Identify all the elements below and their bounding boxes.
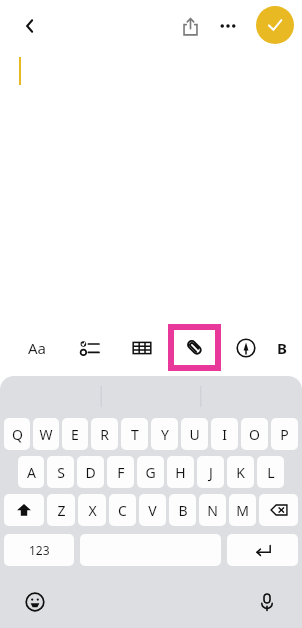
staticText: Z — [57, 501, 66, 520]
button[interactable]: R — [91, 418, 118, 450]
staticText: R — [100, 425, 109, 444]
button[interactable]: Checklist — [64, 327, 116, 369]
button[interactable]: E — [62, 418, 88, 450]
staticText: D — [85, 463, 96, 482]
button[interactable]: Markup — [220, 327, 272, 369]
button[interactable]: J — [197, 456, 224, 488]
button[interactable]: H — [167, 456, 194, 488]
button[interactable]: Share — [172, 8, 209, 44]
button[interactable]: Y — [151, 418, 178, 450]
staticText: T — [131, 425, 139, 444]
button[interactable]: Shift — [4, 494, 44, 526]
button[interactable]: B — [169, 494, 196, 526]
staticText: Q — [12, 425, 23, 444]
staticText: B — [178, 501, 188, 520]
button[interactable]: M — [229, 494, 256, 526]
button[interactable]: G — [137, 456, 164, 488]
staticText: G — [145, 463, 156, 482]
staticText: W — [39, 425, 53, 444]
button[interactable]: U — [181, 418, 208, 450]
button[interactable]: F — [107, 456, 134, 488]
staticText: B — [277, 338, 287, 358]
staticText: N — [207, 501, 218, 520]
staticText: Y — [161, 425, 169, 444]
button[interactable]: L — [257, 456, 284, 488]
button[interactable]: P — [271, 418, 298, 450]
staticText: S — [57, 463, 65, 482]
button[interactable]: Text format — [10, 327, 64, 369]
button[interactable]: Done — [256, 6, 294, 44]
staticText: Aa — [28, 338, 47, 358]
button[interactable]: Emoji — [18, 585, 52, 619]
button[interactable]: Bold — [272, 327, 292, 369]
button[interactable]: Voice input — [250, 585, 284, 619]
staticText: O — [249, 425, 260, 444]
staticText: X — [88, 501, 97, 520]
button[interactable]: N — [199, 494, 226, 526]
staticText: P — [280, 425, 289, 444]
staticText: K — [236, 463, 245, 482]
button[interactable]: Backspace — [259, 494, 298, 526]
staticText: V — [148, 501, 157, 520]
button[interactable]: Attach — [168, 327, 220, 369]
button[interactable]: V — [139, 494, 166, 526]
button[interactable]: A — [18, 456, 44, 488]
staticText: H — [175, 463, 186, 482]
button[interactable]: S — [47, 456, 74, 488]
button[interactable]: Enter — [227, 534, 298, 566]
staticText: A — [27, 463, 36, 482]
button[interactable]: Attach — [168, 324, 221, 371]
button[interactable]: C — [109, 494, 136, 526]
button[interactable]: Q — [4, 418, 30, 450]
staticText: C — [118, 501, 127, 520]
button[interactable]: O — [241, 418, 268, 450]
button[interactable]: Table — [116, 327, 168, 369]
button[interactable]: X — [78, 494, 106, 526]
button[interactable]: 123 — [4, 534, 74, 566]
button[interactable]: T — [121, 418, 148, 450]
staticText: M — [236, 501, 249, 520]
button[interactable]: W — [33, 418, 59, 450]
button[interactable]: Z — [47, 494, 75, 526]
button[interactable]: D — [77, 456, 104, 488]
button[interactable]: Back — [12, 8, 48, 44]
staticText: L — [267, 463, 275, 482]
button[interactable]: More options — [209, 8, 246, 44]
staticText: E — [71, 425, 79, 444]
staticText: U — [189, 425, 200, 444]
staticText: F — [117, 463, 125, 482]
staticText: 123 — [29, 542, 50, 558]
button[interactable]: K — [227, 456, 254, 488]
button[interactable]: I — [211, 418, 238, 450]
staticText: J — [209, 463, 213, 482]
staticText: I — [222, 425, 227, 444]
